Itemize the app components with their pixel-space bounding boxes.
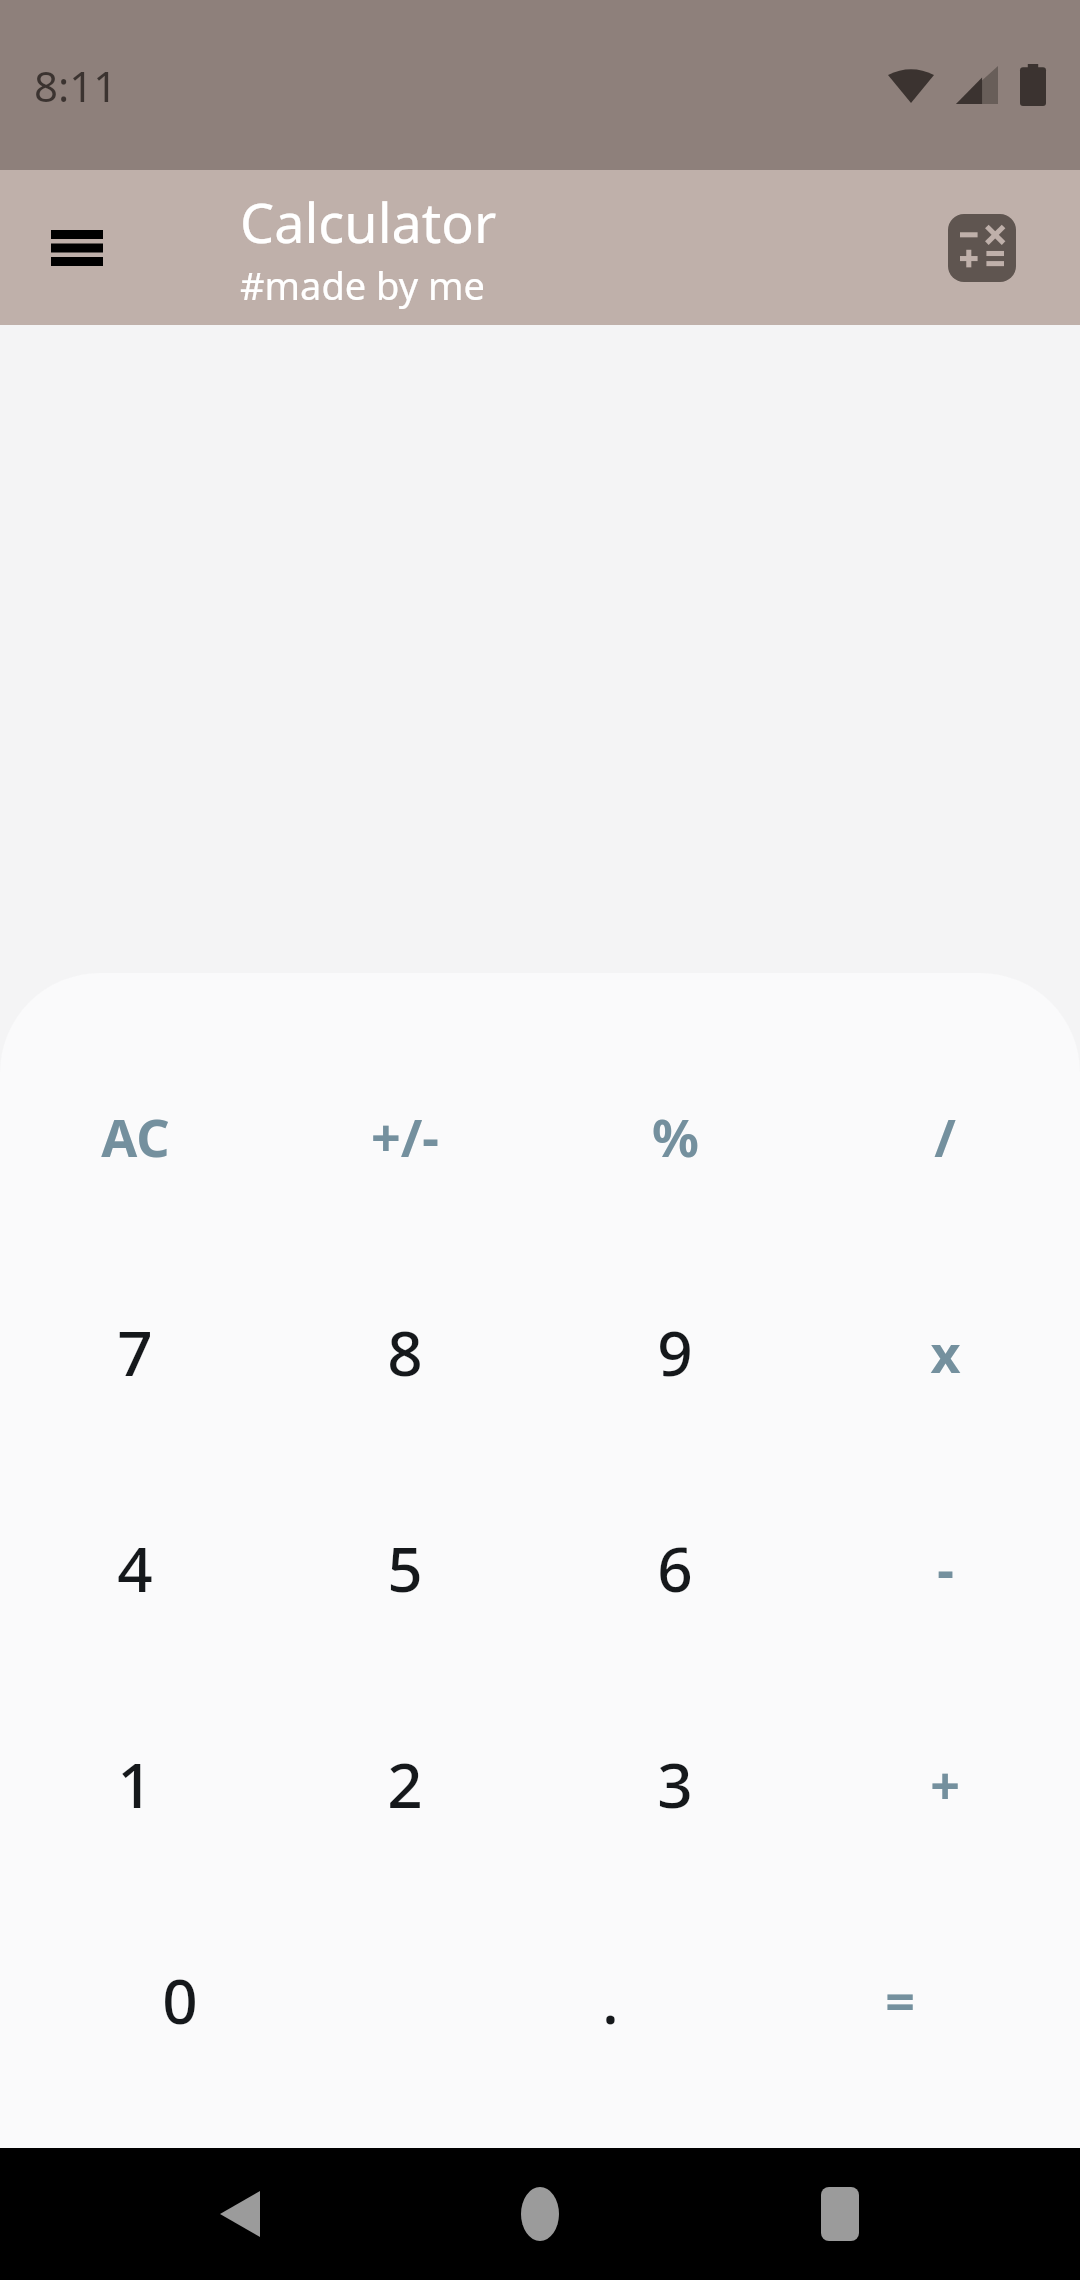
staticText: +/- (371, 1101, 439, 1172)
button[interactable]: AC (0, 1028, 270, 1244)
button[interactable]: Calculator mode (946, 212, 1018, 284)
button[interactable]: Home (480, 2154, 600, 2274)
staticText: 3 (657, 1742, 693, 1826)
staticText: - (937, 1533, 954, 1604)
button[interactable]: 9 (540, 1244, 810, 1460)
staticText: 2 (387, 1742, 423, 1826)
button[interactable]: 8 (270, 1244, 540, 1460)
button[interactable]: = (810, 1892, 1080, 2108)
button[interactable]: 4 (0, 1460, 270, 1676)
staticText: / (934, 1101, 956, 1172)
staticText: 9 (657, 1310, 693, 1394)
button[interactable]: 6 (540, 1460, 810, 1676)
staticText: 7 (117, 1310, 153, 1394)
staticText: #made by me (240, 259, 485, 311)
button[interactable]: 5 (270, 1460, 540, 1676)
button[interactable]: - (810, 1460, 1080, 1676)
button[interactable]: % (540, 1028, 810, 1244)
button[interactable]: Recent apps (780, 2154, 900, 2274)
staticText: . (602, 1958, 619, 2042)
button[interactable]: 3 (540, 1676, 810, 1892)
button[interactable]: 1 (0, 1676, 270, 1892)
button[interactable]: Back (180, 2154, 300, 2274)
button[interactable]: 7 (0, 1244, 270, 1460)
staticText: Calculator (240, 185, 497, 259)
staticText: 5 (387, 1526, 423, 1610)
button[interactable]: +/- (270, 1028, 540, 1244)
staticText: % (652, 1101, 699, 1172)
staticText: 4 (117, 1526, 153, 1610)
staticText: 6 (657, 1526, 693, 1610)
staticText: 8:11 (34, 57, 118, 114)
staticText: + (930, 1749, 960, 1820)
staticText: 8 (387, 1310, 423, 1394)
button[interactable]: 2 (270, 1676, 540, 1892)
staticText: 0 (162, 1958, 198, 2042)
button[interactable]: Open navigation menu (22, 193, 132, 303)
button[interactable]: x (810, 1244, 1080, 1460)
staticText: 1 (117, 1742, 153, 1826)
staticText: x (930, 1317, 961, 1388)
staticText: AC (101, 1101, 170, 1172)
button[interactable]: 0 (0, 1892, 270, 2108)
button[interactable]: / (810, 1028, 1080, 1244)
button[interactable]: + (810, 1676, 1080, 1892)
button[interactable]: . (540, 1892, 810, 2108)
staticText: = (885, 1965, 915, 2036)
